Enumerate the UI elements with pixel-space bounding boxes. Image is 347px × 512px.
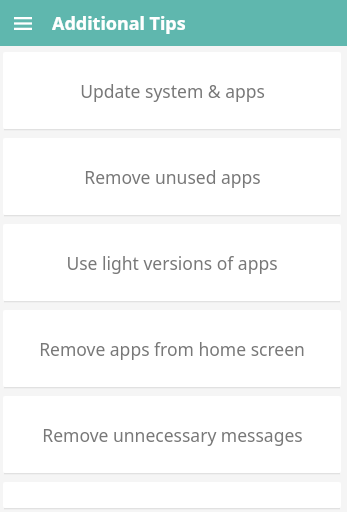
staticText: Use light versions of apps [66, 251, 278, 275]
staticText: Remove apps from home screen [39, 337, 305, 361]
staticText: Additional Tips [52, 11, 186, 36]
staticText: Update system & apps [80, 79, 265, 103]
button[interactable]: Remove apps from home screen [3, 310, 341, 387]
button[interactable]: Use light versions of apps [3, 224, 341, 301]
button[interactable]: Open navigation menu [8, 8, 38, 38]
staticText: Remove unused apps [84, 165, 261, 189]
staticText: Remove unnecessary messages [42, 423, 303, 447]
button[interactable]: Remove unused apps [3, 138, 341, 215]
button[interactable]: Update system & apps [3, 52, 341, 129]
button[interactable]: Remove unnecessary messages [3, 396, 341, 473]
